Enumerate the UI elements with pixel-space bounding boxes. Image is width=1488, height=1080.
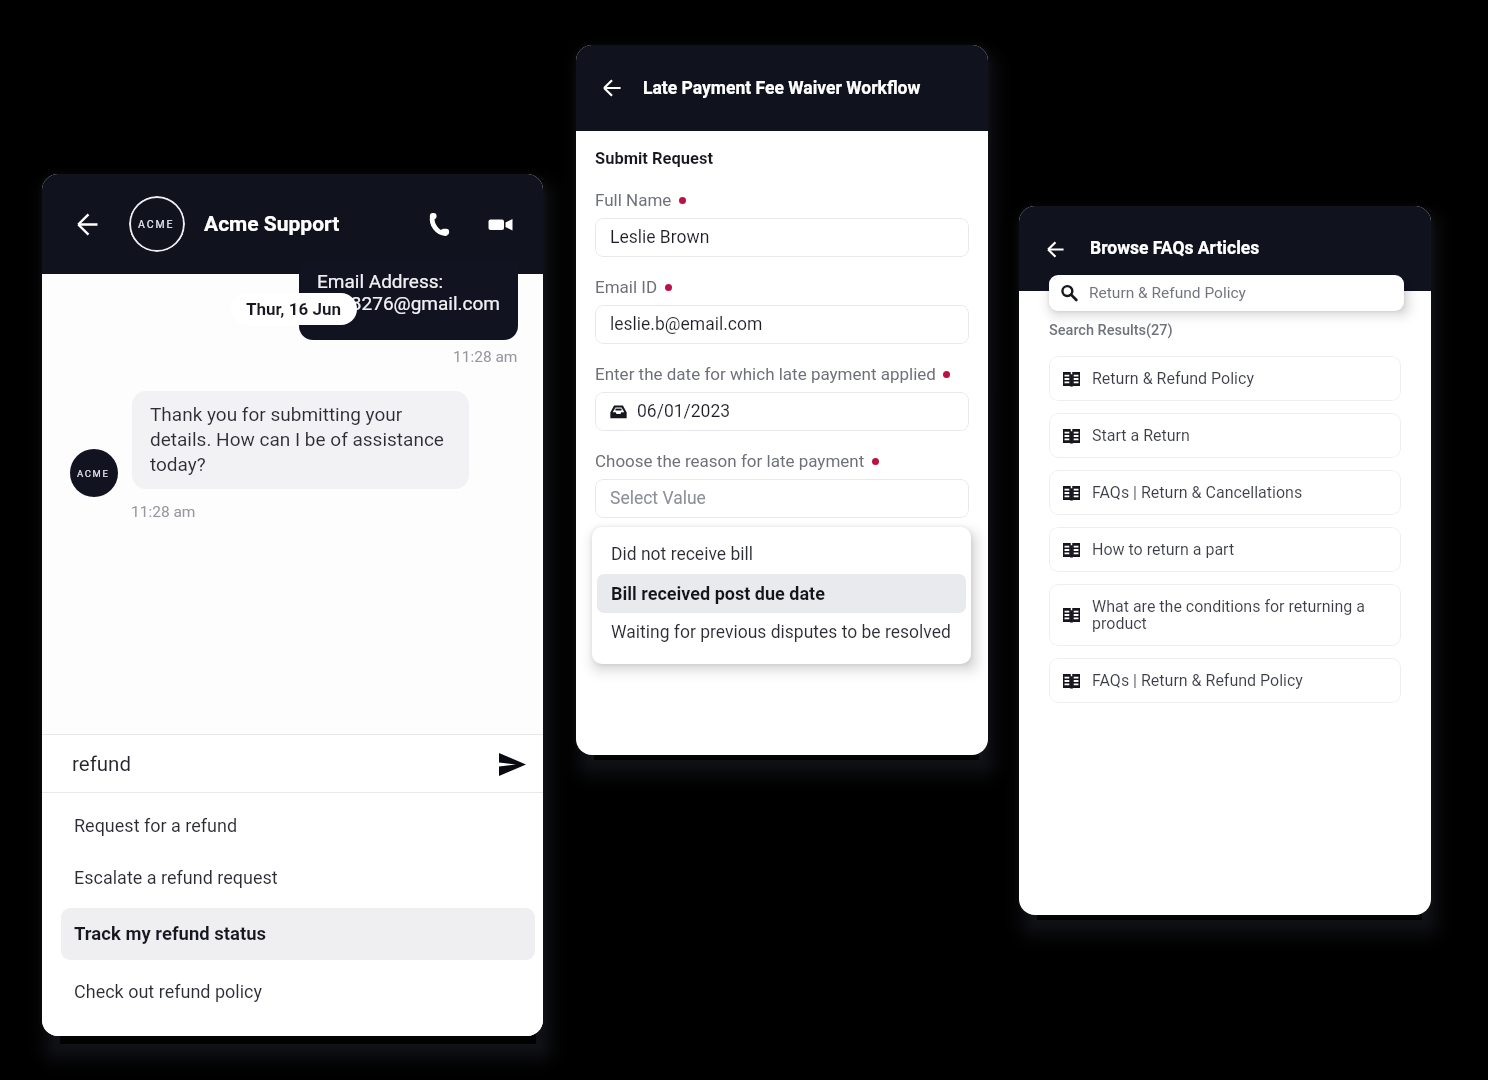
staticText: ACME (138, 218, 175, 230)
staticText: Full Name (595, 190, 672, 210)
staticText: Return & Refund Policy (1092, 369, 1254, 388)
staticText: Return & Refund Policy (1089, 284, 1246, 302)
button[interactable]: Send (494, 746, 530, 782)
staticText: Enter the date for which late payment ap… (595, 364, 936, 384)
button[interactable]: Back (71, 208, 103, 240)
staticText: refund (72, 752, 131, 776)
button[interactable]: Request for a refund (61, 799, 535, 851)
staticText: ACME (77, 468, 110, 479)
staticText: What are the conditions for returning a … (1092, 597, 1387, 633)
staticText: FAQs | Return & Refund Policy (1092, 671, 1303, 690)
button[interactable]: Back (1041, 235, 1069, 263)
button[interactable]: Call (422, 207, 456, 241)
staticText: Waiting for previous disputes to be reso… (611, 622, 951, 643)
staticText: 8276@gmail.com (317, 292, 500, 314)
button[interactable]: Back (598, 74, 626, 102)
button[interactable]: Bill received post due date (597, 574, 966, 613)
staticText: 11:28 am (453, 348, 518, 366)
button[interactable]: leslie.b@email.com (595, 305, 969, 344)
button[interactable]: Escalate a refund request (61, 851, 535, 903)
staticText: 06/01/2023 (637, 401, 731, 422)
staticText: How to return a part (1092, 540, 1235, 559)
button[interactable]: 06/01/2023 (595, 392, 969, 431)
staticText: Request for a refund (74, 815, 238, 836)
button[interactable]: Select Value (595, 479, 969, 518)
button[interactable]: How to return a part (1049, 527, 1401, 572)
staticText: Leslie Brown (610, 227, 710, 248)
button[interactable]: Leslie Brown (595, 218, 969, 257)
staticText: Submit Request (595, 149, 714, 168)
staticText: Choose the reason for late payment (595, 451, 865, 471)
staticText: Browse FAQs Articles (1090, 238, 1260, 259)
staticText: Did not receive bill (611, 544, 753, 565)
staticText: FAQs | Return & Cancellations (1092, 483, 1303, 502)
staticText: Thur, 16 Jun (246, 299, 342, 319)
staticText: Acme Support (204, 212, 340, 237)
staticText: 11:28 am (131, 503, 196, 521)
button[interactable]: Search (1049, 275, 1404, 311)
button[interactable]: Did not receive bill (597, 535, 966, 574)
staticText: Select Value (610, 488, 706, 509)
staticText: Late Payment Fee Waiver Workflow (643, 78, 921, 99)
button[interactable]: Return & Refund Policy (1049, 356, 1401, 401)
button[interactable]: Track my refund status (61, 908, 535, 960)
staticText: Thank you for submitting your details. H… (150, 403, 455, 475)
button[interactable]: Waiting for previous disputes to be reso… (597, 613, 966, 652)
button[interactable]: FAQs | Return & Refund Policy (1049, 658, 1401, 703)
staticText: Track my refund status (74, 923, 267, 945)
staticText: Start a Return (1092, 426, 1190, 445)
staticText: Email Address: (317, 270, 444, 292)
other: Search (1061, 285, 1077, 301)
button[interactable]: Video call (483, 207, 517, 241)
staticText: Check out refund policy (74, 981, 263, 1002)
button[interactable]: Start a Return (1049, 413, 1401, 458)
staticText: Email ID (595, 277, 658, 297)
staticText: Bill received post due date (611, 583, 825, 604)
button[interactable]: FAQs | Return & Cancellations (1049, 470, 1401, 515)
staticText: Escalate a refund request (74, 867, 278, 888)
staticText: leslie.b@email.com (610, 314, 763, 335)
button[interactable]: What are the conditions for returning a … (1049, 584, 1401, 646)
button[interactable]: Check out refund policy (61, 965, 535, 1017)
staticText: Search Results(27) (1049, 322, 1173, 339)
